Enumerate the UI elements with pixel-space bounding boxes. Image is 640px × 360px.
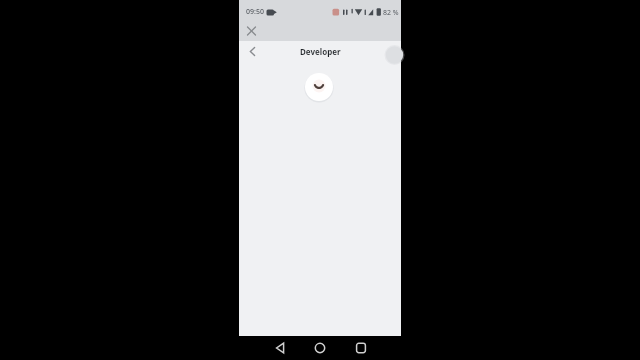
button[interactable] [242, 22, 261, 41]
button[interactable] [305, 73, 333, 101]
staticText: 82 % [383, 8, 399, 18]
staticText: Developer [300, 46, 341, 57]
button[interactable] [239, 41, 265, 62]
button[interactable] [308, 336, 332, 360]
button[interactable] [268, 336, 292, 360]
staticText: 09:50 [246, 7, 264, 17]
button[interactable] [349, 336, 373, 360]
